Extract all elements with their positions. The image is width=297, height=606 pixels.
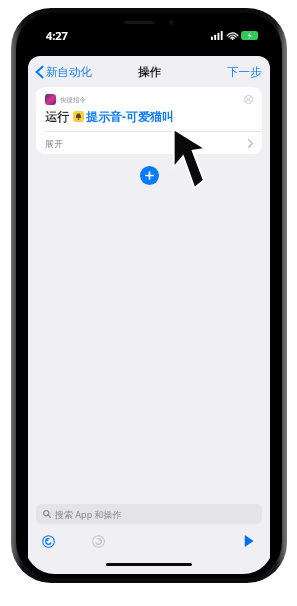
button[interactable]: 展开 xyxy=(36,132,262,154)
staticText: 快捷指令 xyxy=(60,96,86,104)
button[interactable]: 下一步 xyxy=(219,61,270,83)
staticText: 下一步 xyxy=(227,65,262,79)
button[interactable]: Add action xyxy=(140,166,159,185)
staticText: 4:27 xyxy=(46,28,68,43)
button[interactable]: Remove action xyxy=(243,94,254,105)
button[interactable]: 快捷指令 xyxy=(36,87,262,154)
staticText: 搜索 App 和操作 xyxy=(55,508,122,520)
button[interactable]: 新自动化 xyxy=(28,61,98,83)
staticText: 提示音-可爱猫叫 xyxy=(86,108,174,124)
staticText: 操作 xyxy=(138,65,161,79)
button[interactable]: 搜索 App 和操作 xyxy=(36,504,262,524)
button[interactable]: Redo xyxy=(88,531,108,551)
button[interactable]: Run shortcut xyxy=(238,530,260,552)
staticText: 运行 xyxy=(45,109,69,124)
staticText: 展开 xyxy=(45,138,63,149)
button[interactable]: Undo xyxy=(38,531,58,551)
staticText: 新自动化 xyxy=(46,65,92,79)
